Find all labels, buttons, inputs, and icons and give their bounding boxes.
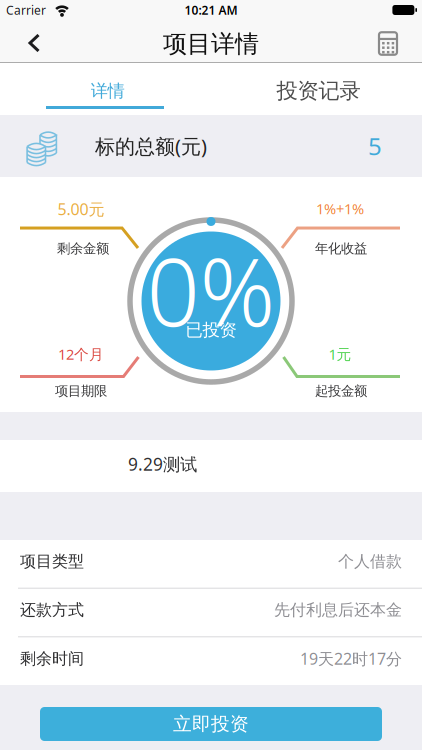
staticText: 5 xyxy=(368,130,382,162)
staticText: 12个月 xyxy=(58,344,104,364)
button[interactable]: 详情 xyxy=(0,63,211,115)
staticText: 剩余时间 xyxy=(20,649,84,668)
staticText: 先付利息后还本金 xyxy=(274,600,402,620)
staticText: 10:21 AM xyxy=(184,2,237,18)
staticText: 项目期限 xyxy=(55,383,107,399)
staticText: 立即投资 xyxy=(173,712,249,735)
button[interactable]: Back xyxy=(14,20,54,62)
staticText: 1元 xyxy=(328,344,351,364)
staticText: 0% xyxy=(146,228,275,352)
staticText: 9.29测试 xyxy=(128,452,197,475)
staticText: 个人借款 xyxy=(338,552,402,571)
staticText: 5.00元 xyxy=(57,198,104,220)
staticText: 年化收益 xyxy=(315,240,367,257)
staticText: 19天22时17分 xyxy=(300,648,402,669)
staticText: 项目类型 xyxy=(20,552,84,571)
button[interactable]: 投资记录 xyxy=(211,63,422,115)
staticText: 1%+1% xyxy=(316,199,364,218)
staticText: 投资记录 xyxy=(276,78,360,104)
staticText: 项目详情 xyxy=(163,29,259,59)
staticText: 起投金额 xyxy=(315,383,367,399)
staticText: 已投资 xyxy=(185,319,236,341)
staticText: 标的总额(元) xyxy=(95,133,207,159)
button[interactable]: Calculator xyxy=(366,20,410,62)
button[interactable]: 立即投资 xyxy=(40,707,382,741)
staticText: Carrier xyxy=(6,2,46,18)
staticText: 剩余金额 xyxy=(57,240,109,257)
staticText: 还款方式 xyxy=(20,600,84,620)
staticText: 详情 xyxy=(90,80,124,102)
